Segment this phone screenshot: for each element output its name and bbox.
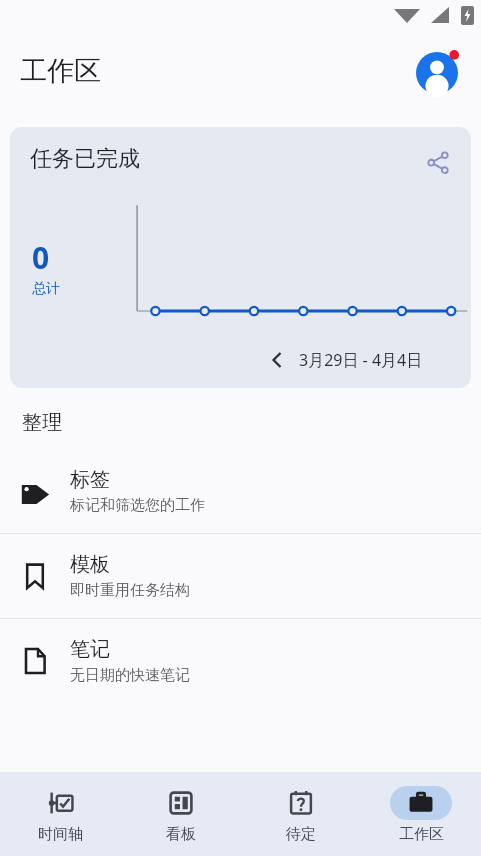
staticText: 标记和筛选您的工作	[70, 496, 205, 515]
button[interactable]: 看板	[121, 773, 241, 856]
button[interactable]: 工作区	[361, 773, 481, 856]
staticText: 标签	[70, 467, 110, 492]
staticText: 任务已完成	[30, 145, 140, 173]
staticText: 整理	[22, 410, 62, 435]
button[interactable]: Account	[415, 47, 463, 95]
staticText: 无日期的快速笔记	[70, 666, 190, 685]
staticText: 工作区	[399, 825, 444, 844]
button[interactable]: 待定	[241, 773, 361, 856]
button[interactable]: Share	[421, 145, 455, 179]
staticText: 工作区	[20, 54, 101, 88]
button[interactable]: 笔记	[0, 619, 481, 703]
staticText: 模板	[70, 552, 110, 577]
button[interactable]: 模板	[0, 534, 481, 618]
staticText: 待定	[286, 825, 316, 844]
staticText: 0	[32, 237, 50, 278]
button[interactable]: 3月29日 - 4月4日	[299, 349, 423, 371]
button[interactable]: 标签	[0, 449, 481, 533]
staticText: 即时重用任务结构	[70, 581, 190, 600]
staticText: 看板	[166, 825, 196, 844]
button[interactable]: 时间轴	[0, 773, 121, 856]
button[interactable]: 任务已完成	[10, 127, 471, 388]
staticText: 笔记	[70, 637, 110, 662]
staticText: 总计	[32, 280, 60, 298]
button[interactable]: Previous week	[263, 346, 291, 374]
staticText: 时间轴	[38, 825, 83, 844]
